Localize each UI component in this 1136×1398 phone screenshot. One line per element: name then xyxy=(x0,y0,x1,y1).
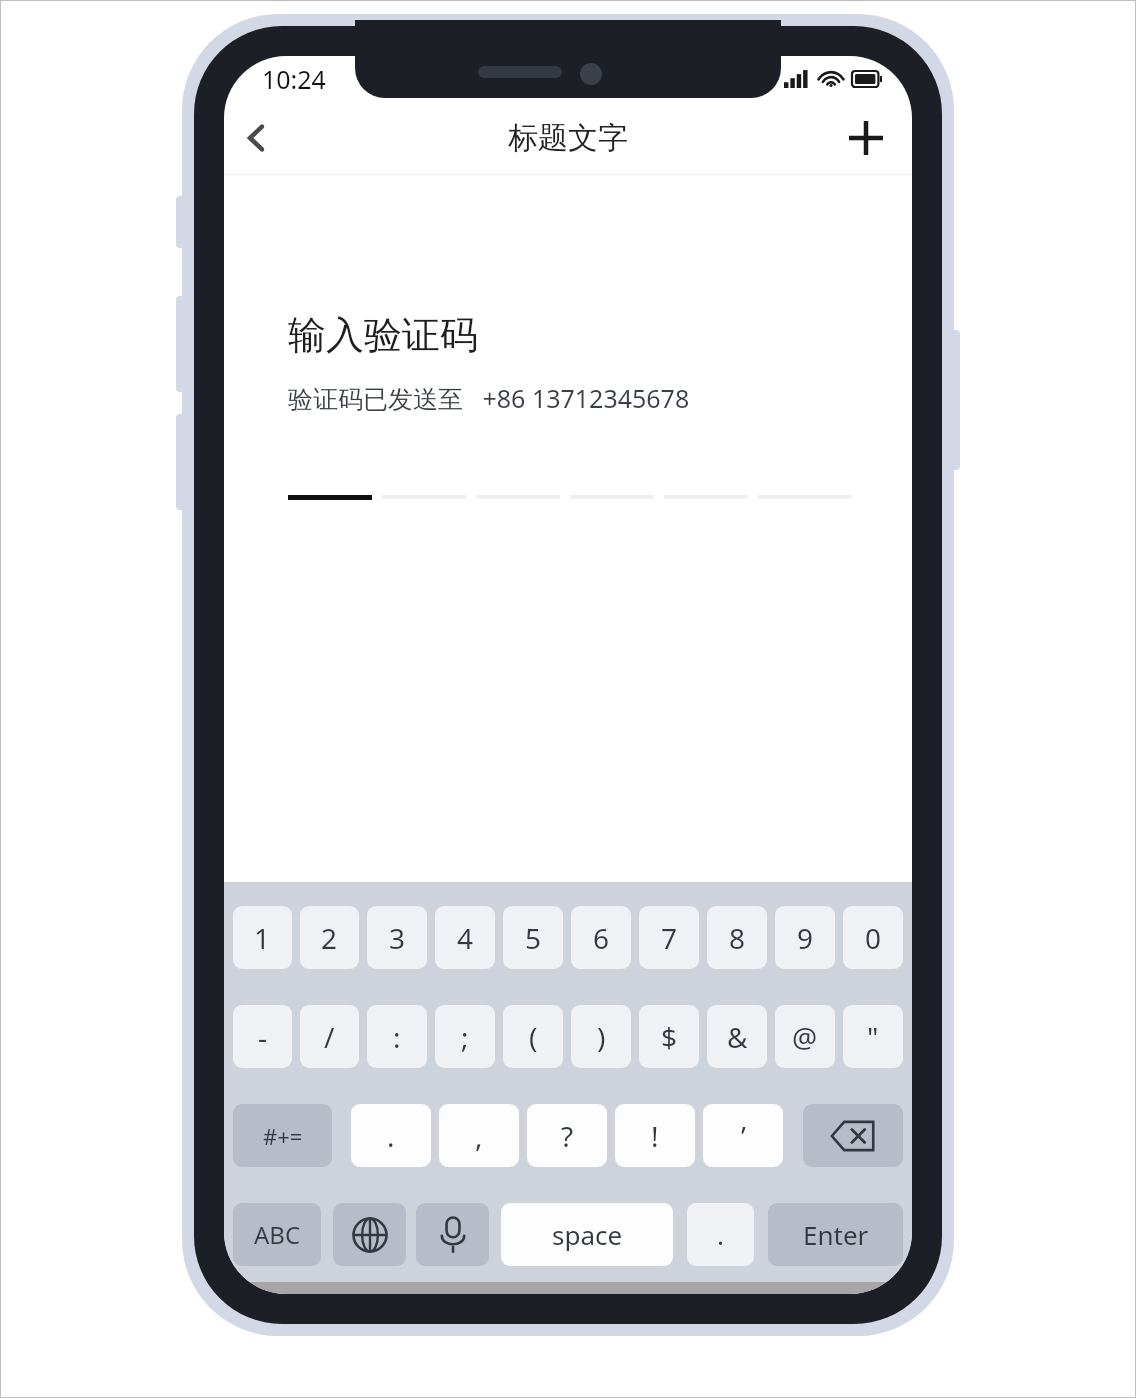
button[interactable]: 9 xyxy=(775,906,835,969)
staticText: . xyxy=(717,1217,724,1252)
button[interactable]: ABC xyxy=(233,1203,321,1266)
staticText: 输入验证码 xyxy=(288,311,478,359)
staticText: #+= xyxy=(263,1121,303,1151)
button[interactable]: Voice input xyxy=(416,1203,489,1266)
button[interactable]: ? xyxy=(527,1104,607,1167)
button[interactable]: / xyxy=(300,1005,359,1068)
staticText: - xyxy=(258,1018,268,1056)
staticText: 标题文字 xyxy=(508,119,628,157)
staticText: " xyxy=(867,1018,879,1056)
staticText: / xyxy=(324,1018,335,1056)
button[interactable]: - xyxy=(233,1005,292,1068)
button[interactable]: ! xyxy=(615,1104,695,1167)
staticText: @ xyxy=(792,1018,818,1056)
button[interactable]: 6 xyxy=(571,906,631,969)
button[interactable]: . xyxy=(351,1104,431,1167)
button[interactable]: 1 xyxy=(233,906,292,969)
staticText: ? xyxy=(561,1117,574,1155)
button[interactable]: ’ xyxy=(703,1104,783,1167)
staticText: ! xyxy=(651,1117,659,1155)
staticText: $ xyxy=(661,1018,678,1056)
staticText: 2 xyxy=(321,919,338,957)
button[interactable]: 3 xyxy=(367,906,427,969)
button[interactable]: Back xyxy=(224,106,288,170)
staticText: , xyxy=(475,1117,483,1155)
staticText: 1 xyxy=(254,919,271,957)
button[interactable]: Add xyxy=(834,106,898,170)
staticText: 9 xyxy=(797,919,814,957)
button[interactable]: ) xyxy=(571,1005,631,1068)
button[interactable]: ( xyxy=(503,1005,563,1068)
staticText: space xyxy=(552,1217,623,1252)
staticText: 10:24 xyxy=(262,62,326,96)
staticText: 6 xyxy=(593,919,610,957)
staticText: ; xyxy=(461,1018,469,1056)
staticText: . xyxy=(387,1117,395,1155)
button[interactable]: space xyxy=(501,1203,673,1266)
staticText: ) xyxy=(597,1018,606,1056)
staticText: : xyxy=(393,1018,401,1056)
button[interactable]: , xyxy=(439,1104,519,1167)
button[interactable]: Backspace xyxy=(803,1104,903,1167)
button[interactable]: 4 xyxy=(435,906,495,969)
button[interactable]: . xyxy=(687,1203,754,1266)
staticText: ’ xyxy=(741,1117,746,1155)
staticText: Enter xyxy=(803,1217,869,1252)
staticText: 8 xyxy=(729,919,746,957)
staticText: ( xyxy=(529,1018,538,1056)
button[interactable]: Enter xyxy=(768,1203,903,1266)
button[interactable]: 2 xyxy=(300,906,359,969)
button[interactable]: 7 xyxy=(639,906,699,969)
button[interactable]: " xyxy=(843,1005,903,1068)
button[interactable]: 8 xyxy=(707,906,767,969)
button[interactable]: Change language xyxy=(333,1203,406,1266)
staticText: & xyxy=(727,1018,748,1056)
staticText: ABC xyxy=(254,1218,301,1251)
staticText: 验证码已发送至 +86 13712345678 xyxy=(288,381,690,415)
button[interactable]: #+= xyxy=(233,1104,332,1167)
button[interactable]: 5 xyxy=(503,906,563,969)
staticText: 7 xyxy=(661,919,678,957)
button[interactable]: : xyxy=(367,1005,427,1068)
button[interactable]: @ xyxy=(775,1005,835,1068)
button[interactable]: & xyxy=(707,1005,767,1068)
staticText: 5 xyxy=(525,919,542,957)
button[interactable]: ; xyxy=(435,1005,495,1068)
staticText: 4 xyxy=(457,919,474,957)
staticText: 0 xyxy=(865,919,882,957)
button[interactable]: 0 xyxy=(843,906,903,969)
button[interactable]: $ xyxy=(639,1005,699,1068)
staticText: 3 xyxy=(389,919,406,957)
